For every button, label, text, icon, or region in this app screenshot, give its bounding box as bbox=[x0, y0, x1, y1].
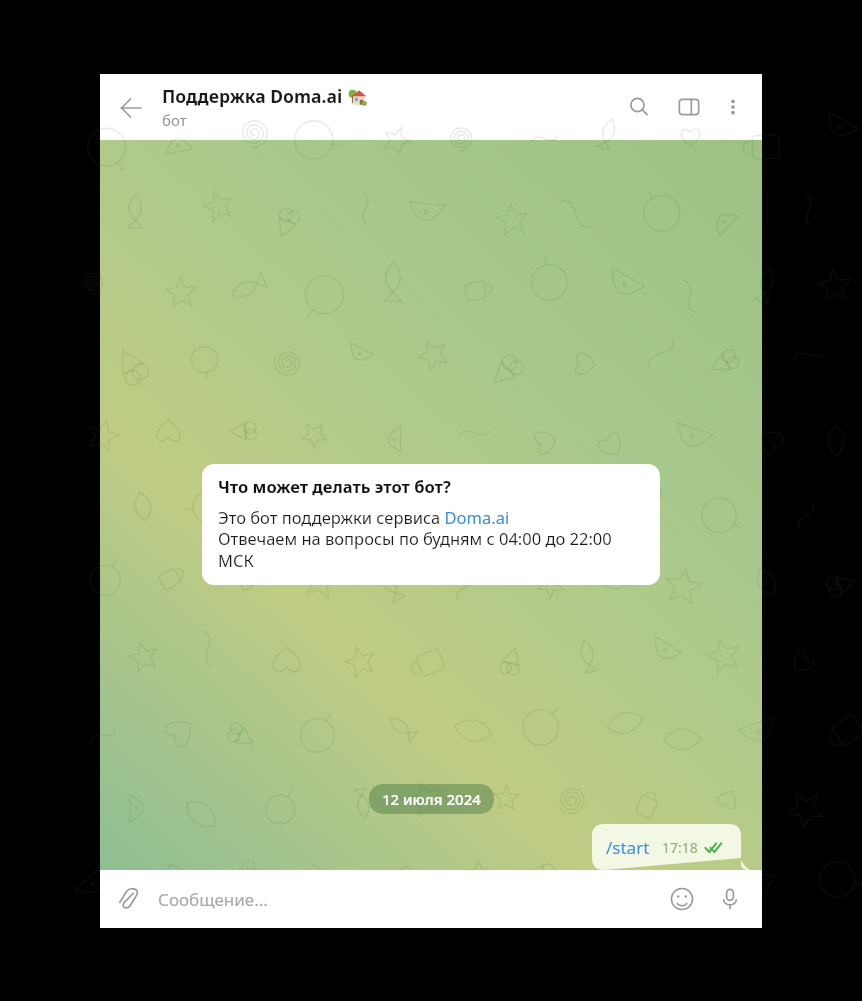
button[interactable]: Toggle sidebar bbox=[672, 90, 706, 124]
button[interactable]: More options bbox=[716, 90, 750, 124]
staticText: Сообщение... bbox=[158, 888, 268, 911]
staticText: /start bbox=[606, 836, 650, 859]
staticText: Это бот поддержки сервиса Doma.ai Отвеча… bbox=[218, 506, 644, 572]
button[interactable]: Поддержка Doma.ai bbox=[162, 84, 371, 130]
button[interactable]: Back bbox=[114, 91, 148, 125]
button[interactable]: 12 июля 2024 bbox=[369, 784, 494, 814]
button[interactable]: Что может делать этот бот? bbox=[202, 464, 660, 585]
button[interactable]: Emoji bbox=[662, 879, 702, 919]
staticText: Что может делать этот бот? bbox=[218, 475, 451, 497]
button[interactable]: Record voice message bbox=[710, 879, 750, 919]
button[interactable]: Search bbox=[622, 90, 656, 124]
staticText: Поддержка Doma.ai bbox=[162, 84, 343, 108]
staticText: бот bbox=[162, 110, 187, 130]
staticText: 12 июля 2024 bbox=[382, 789, 481, 809]
button[interactable]: Attach file bbox=[108, 879, 148, 919]
button[interactable]: /start bbox=[592, 824, 750, 870]
staticText: 17:18 bbox=[662, 838, 698, 857]
button[interactable]: Сообщение... bbox=[158, 877, 698, 921]
